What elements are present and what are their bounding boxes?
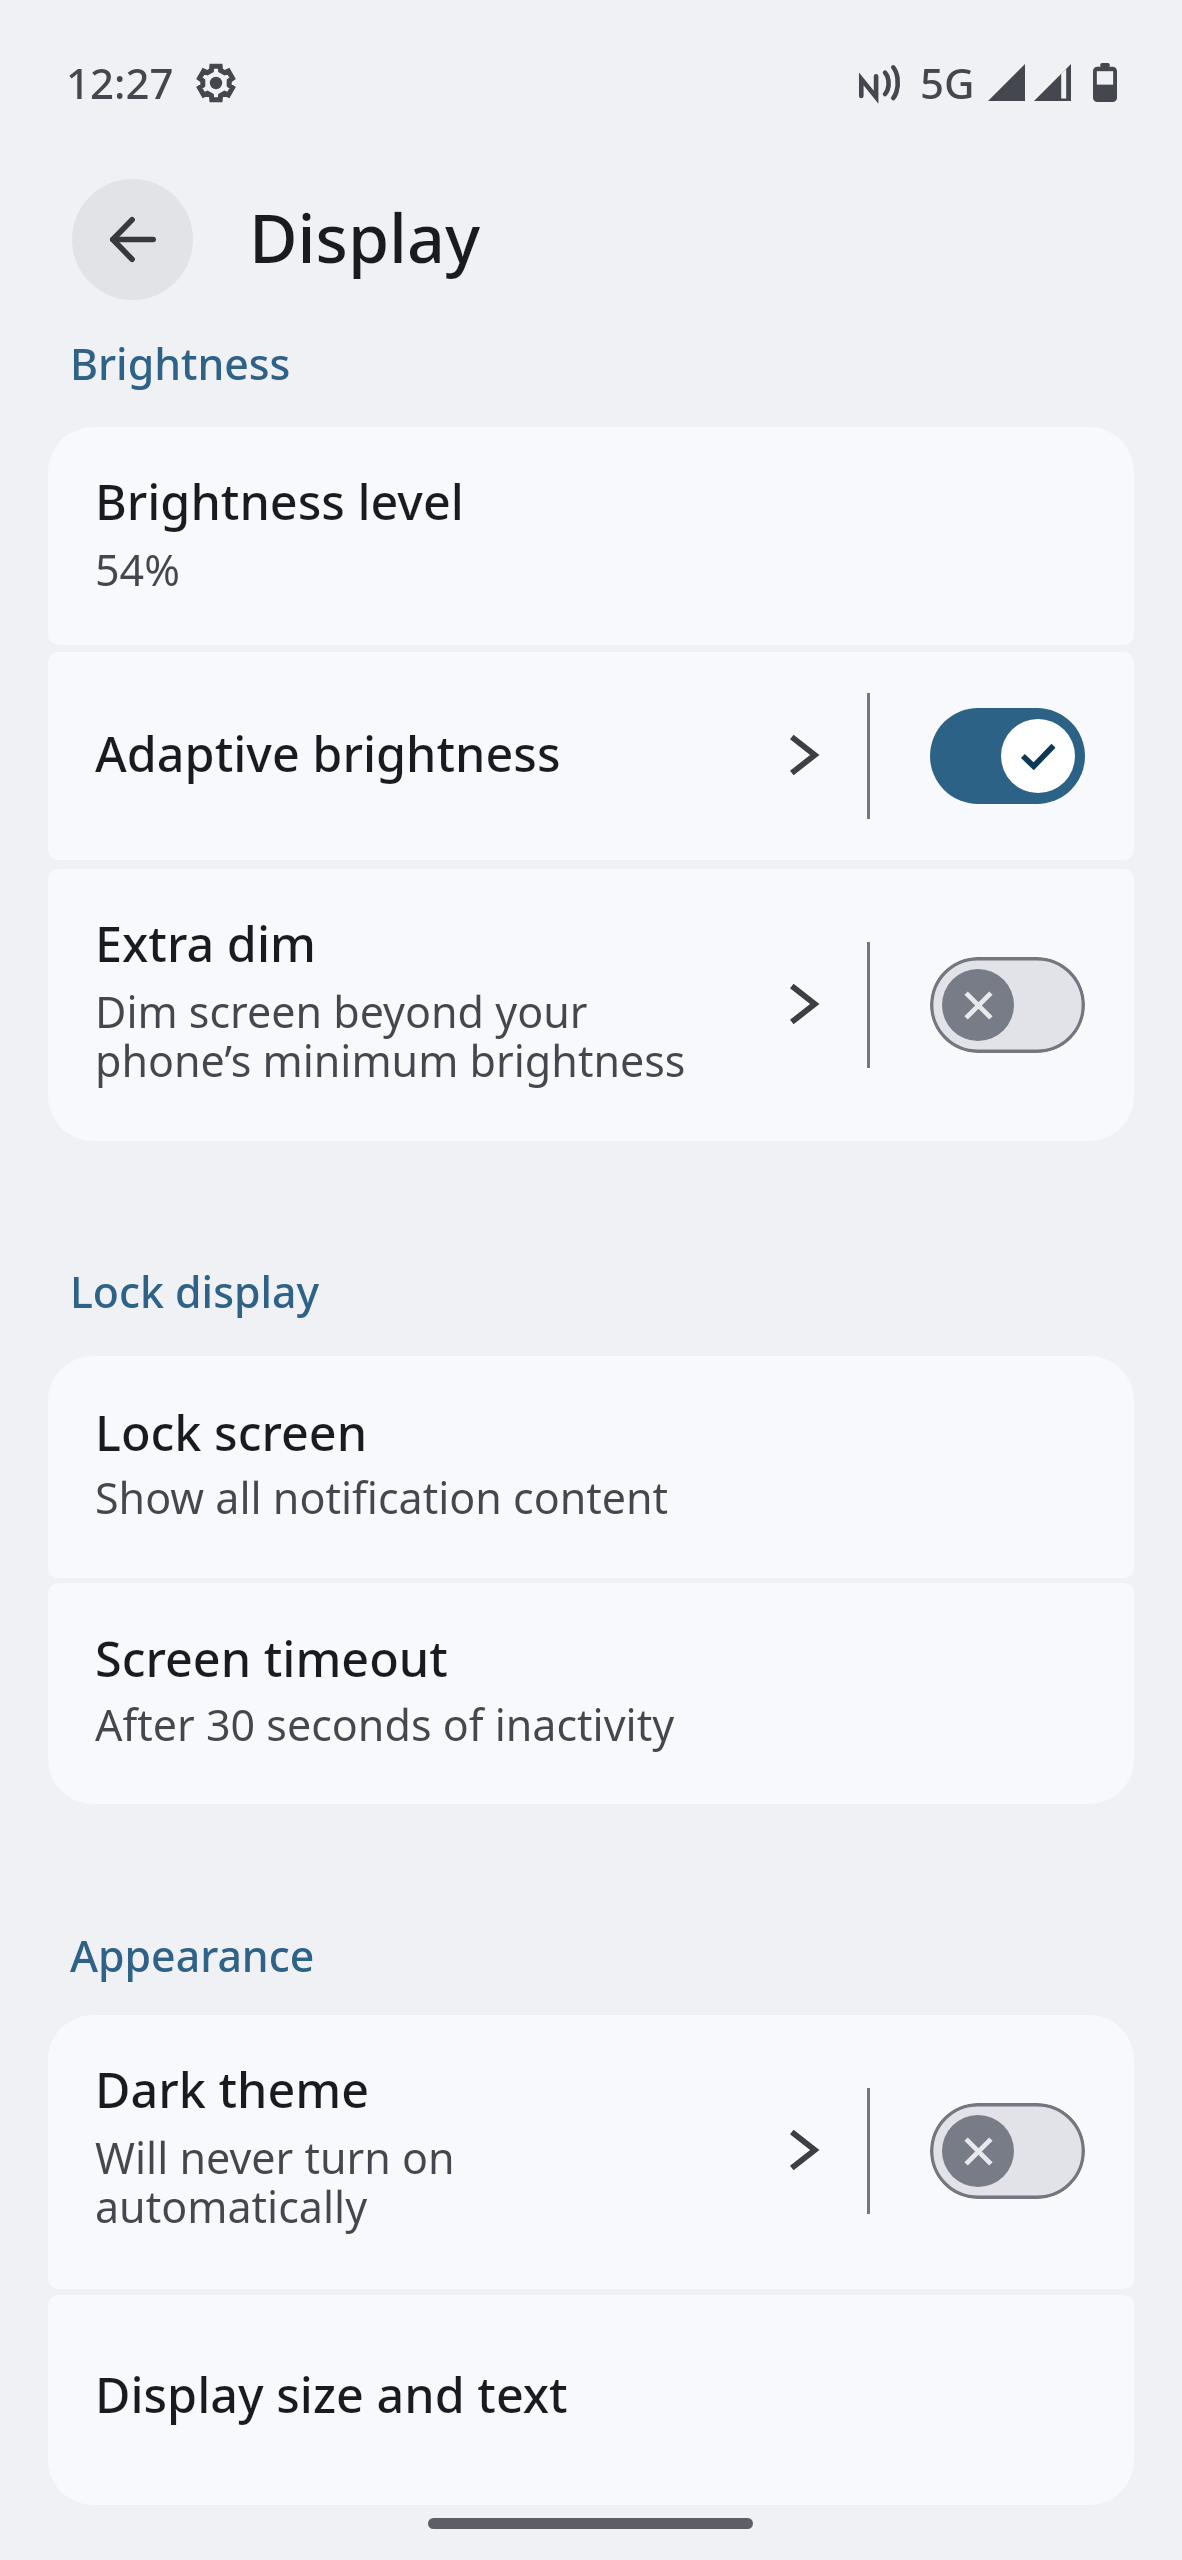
button[interactable]: Lock screen (48, 1356, 1134, 1578)
staticText: Extra dim (95, 910, 316, 976)
staticText: automatically (95, 2177, 368, 2236)
staticText: Brightness level (95, 468, 464, 534)
staticText: Show all notification content (95, 1468, 669, 1527)
staticText: Dark theme (95, 2056, 370, 2122)
staticText: Brightness (70, 334, 291, 392)
button[interactable]: Back (72, 179, 193, 300)
button[interactable]: Toggle off (930, 2103, 1085, 2199)
staticText: After 30 seconds of inactivity (95, 1695, 675, 1754)
staticText: Will never turn on (95, 2128, 455, 2187)
button[interactable]: Toggle on (930, 708, 1085, 804)
button[interactable]: Brightness level (48, 427, 1134, 645)
staticText: phone’s minimum brightness (95, 1031, 686, 1090)
staticText: Screen timeout (95, 1625, 448, 1691)
staticText: Display size and text (95, 2361, 568, 2427)
staticText: Lock display (70, 1262, 320, 1320)
staticText: 5G (920, 54, 975, 111)
staticText: 12:27 (66, 54, 174, 111)
staticText: Lock screen (95, 1399, 368, 1465)
button[interactable]: Display size and text (48, 2295, 1134, 2505)
staticText: Appearance (70, 1926, 315, 1984)
button[interactable]: Adaptive brightness (48, 652, 1134, 860)
staticText: Display (249, 192, 481, 283)
staticText: Dim screen beyond your (95, 982, 588, 1041)
staticText: Adaptive brightness (95, 720, 561, 786)
button[interactable]: Screen timeout (48, 1583, 1134, 1804)
staticText: 54% (95, 540, 180, 599)
button[interactable]: Extra dim (48, 869, 1134, 1141)
button[interactable]: Dark theme (48, 2015, 1134, 2289)
button[interactable]: Toggle off (930, 957, 1085, 1053)
